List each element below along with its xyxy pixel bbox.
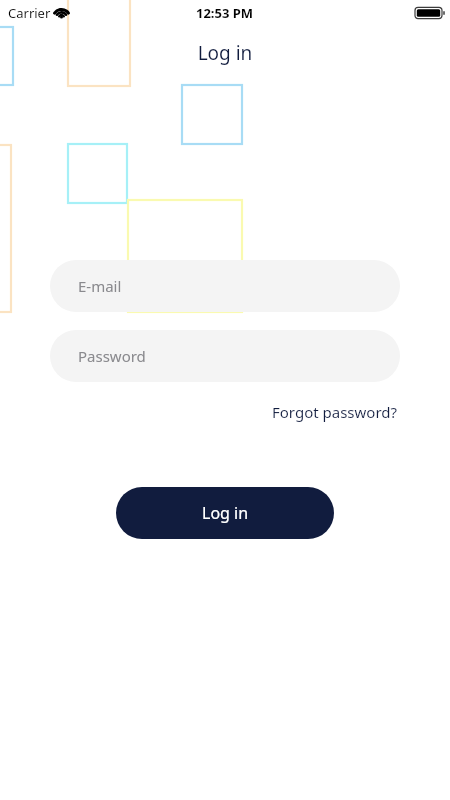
staticText: 12:53 PM	[196, 4, 254, 22]
button[interactable]: Log in	[116, 487, 334, 539]
staticText: Log in	[0, 40, 450, 66]
staticText: Password	[78, 346, 146, 366]
staticText: E-mail	[78, 276, 122, 296]
staticText: Forgot password?	[272, 402, 398, 422]
other: Battery full	[415, 6, 445, 20]
other: Wi-Fi	[53, 6, 70, 19]
button[interactable]: Forgot password?	[270, 400, 400, 424]
staticText: Carrier	[8, 4, 51, 22]
button[interactable]: E-mail	[50, 260, 400, 312]
button[interactable]: Password	[50, 330, 400, 382]
staticText: Log in	[202, 502, 249, 524]
